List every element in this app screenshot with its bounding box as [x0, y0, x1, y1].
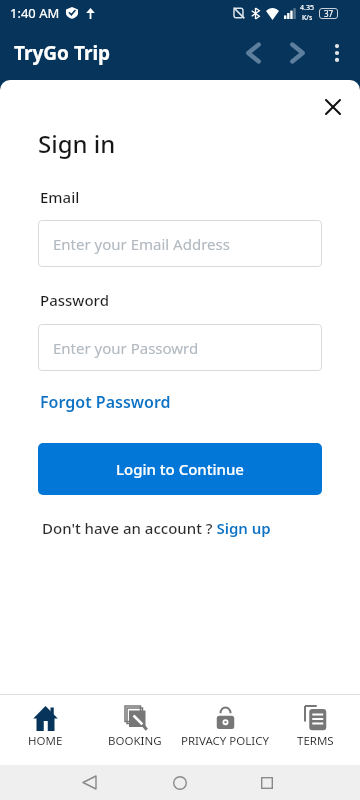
button[interactable]: Login to Continue: [38, 443, 322, 495]
button[interactable]: PRIVACY POLICY: [180, 695, 270, 765]
staticText: TERMS: [297, 733, 334, 749]
button[interactable]: [277, 33, 317, 73]
button[interactable]: [320, 36, 354, 70]
staticText: HOME: [28, 733, 63, 749]
button[interactable]: TERMS: [270, 695, 360, 765]
staticText: Sign in: [38, 127, 116, 160]
staticText: Email: [40, 187, 80, 207]
staticText: PRIVACY POLICY: [181, 733, 269, 749]
button[interactable]: BOOKING: [90, 695, 180, 765]
staticText: Enter your Email Address: [53, 234, 230, 254]
button[interactable]: [320, 94, 346, 120]
staticText: 1:40 AM: [10, 4, 60, 22]
button[interactable]: [233, 33, 273, 73]
button[interactable]: [83, 776, 96, 789]
staticText: Password: [40, 290, 109, 310]
staticText: TryGo Trip: [14, 40, 111, 66]
button[interactable]: Don't have an account ? Sign up: [42, 518, 271, 538]
button[interactable]: Forgot Password: [40, 391, 171, 413]
staticText: 4.35: [300, 3, 314, 13]
staticText: Enter your Passowrd: [53, 338, 199, 358]
button[interactable]: Enter your Passowrd: [38, 324, 322, 371]
staticText: Login to Continue: [116, 459, 244, 479]
button[interactable]: [261, 777, 273, 789]
staticText: K/s: [302, 13, 313, 23]
button[interactable]: [173, 776, 187, 790]
button[interactable]: HOME: [0, 695, 90, 765]
staticText: 37: [324, 8, 334, 19]
staticText: BOOKING: [108, 733, 162, 749]
button[interactable]: Enter your Email Address: [38, 220, 322, 267]
